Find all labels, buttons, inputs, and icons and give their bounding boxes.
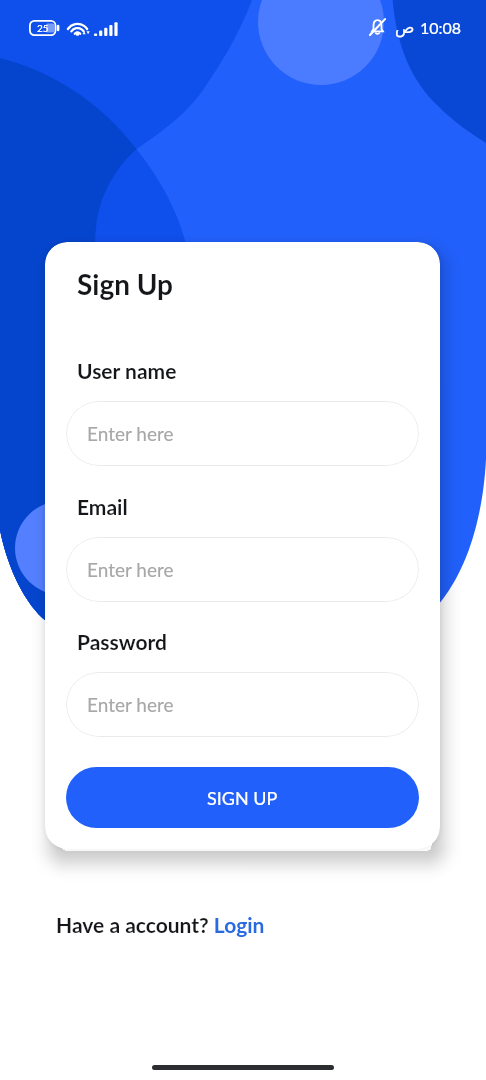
staticText: Have a account? Login <box>56 912 265 937</box>
staticText: Enter here <box>87 422 174 445</box>
button[interactable]: Enter here <box>66 672 419 737</box>
staticText: Email <box>77 494 128 519</box>
staticText: Password <box>77 629 167 654</box>
staticText: SIGN UP <box>207 787 278 809</box>
button[interactable]: Enter here <box>66 401 419 466</box>
staticText: 25 <box>37 22 49 34</box>
button[interactable]: SIGN UP <box>66 767 419 828</box>
other: Notifications muted <box>367 17 388 38</box>
staticText: 10:08 <box>420 18 462 37</box>
staticText: User name <box>77 358 177 383</box>
staticText: ص <box>395 18 415 37</box>
staticText: Sign Up <box>77 267 174 301</box>
staticText: Enter here <box>87 693 174 716</box>
button[interactable]: Have a account? Login <box>56 912 265 937</box>
staticText: Enter here <box>87 558 174 581</box>
button[interactable]: Enter here <box>66 537 419 602</box>
